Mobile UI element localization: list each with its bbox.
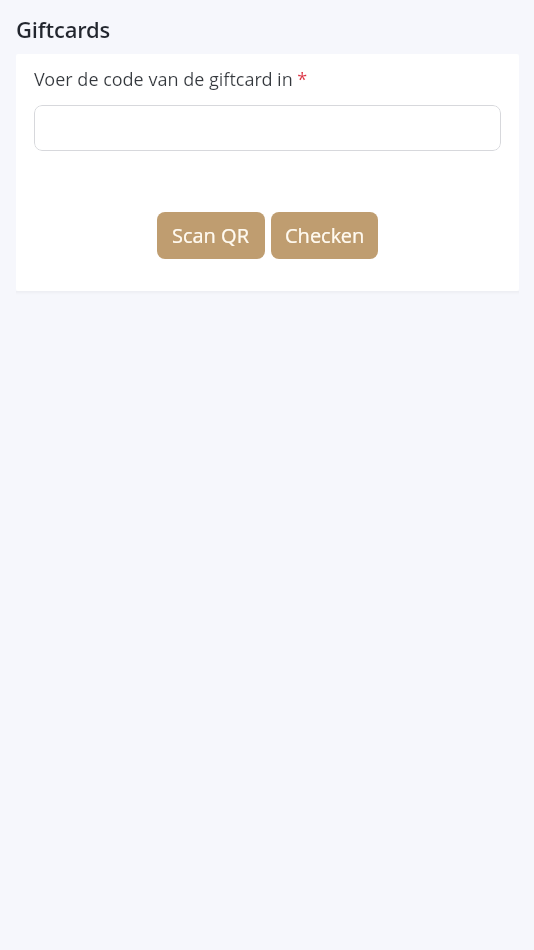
button[interactable]: Checken — [271, 212, 378, 259]
staticText: Voer de code van de giftcard in * — [34, 67, 308, 92]
button[interactable]: Scan QR — [157, 212, 265, 259]
staticText: Checken — [285, 222, 365, 249]
staticText: Scan QR — [172, 222, 250, 249]
staticText: Giftcards — [16, 14, 111, 44]
button[interactable]: Giftcard code invoerveld — [34, 105, 501, 151]
